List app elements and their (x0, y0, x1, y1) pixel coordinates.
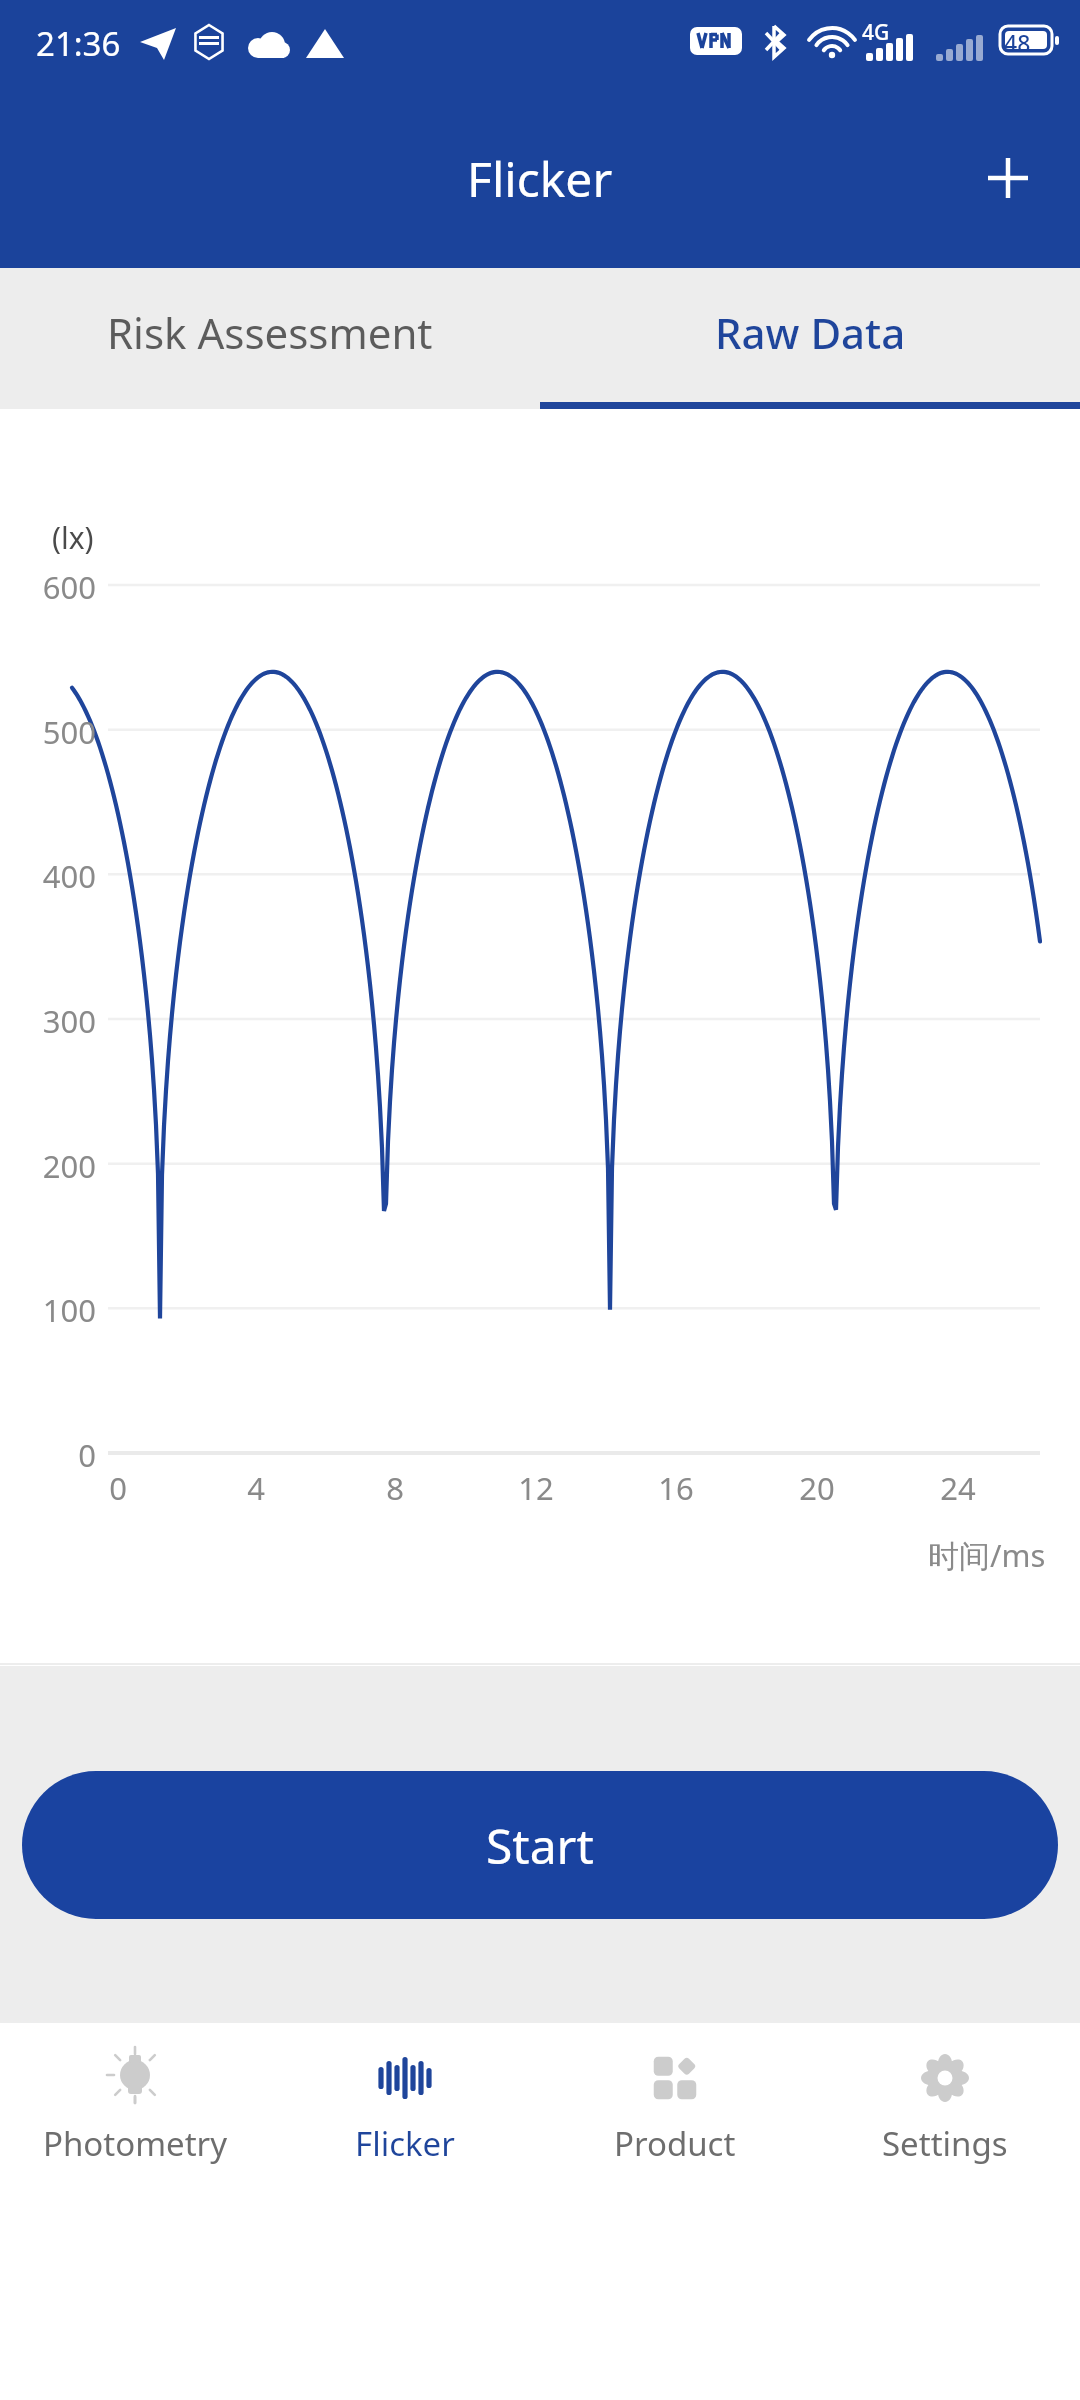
button[interactable]: Risk Assessment (0, 268, 540, 409)
staticText: Raw Data (715, 304, 906, 361)
staticText: Start (486, 1813, 594, 1878)
staticText: 4G (862, 18, 890, 47)
staticText: Flicker (355, 2121, 455, 2166)
staticText: 16 (636, 1467, 716, 1509)
staticText: 21:36 (36, 21, 121, 66)
button[interactable]: Raw Data (540, 268, 1080, 409)
staticText: (lx) (52, 517, 94, 558)
staticText: 4 (216, 1467, 296, 1509)
staticText: 500 (8, 711, 96, 753)
staticText: 20 (777, 1467, 857, 1509)
staticText: Settings (882, 2121, 1008, 2166)
staticText: Risk Assessment (107, 304, 433, 361)
button[interactable]: Add (966, 136, 1050, 220)
staticText: 0 (78, 1467, 158, 1509)
button[interactable]: Start (22, 1771, 1058, 1919)
staticText: 时间/ms (928, 1534, 1046, 1576)
staticText: 48 (1004, 27, 1031, 58)
staticText: 400 (8, 855, 96, 897)
staticText: 24 (918, 1467, 998, 1509)
staticText: Photometry (43, 2121, 228, 2166)
staticText: 8 (355, 1467, 435, 1509)
staticText: 0 (8, 1434, 96, 1476)
button[interactable]: Settings (810, 2023, 1080, 2192)
staticText: 300 (8, 1000, 96, 1042)
staticText: 12 (496, 1467, 576, 1509)
staticText: Flicker (467, 146, 613, 211)
staticText: 100 (8, 1289, 96, 1331)
button[interactable]: Photometry (0, 2023, 270, 2192)
staticText: 200 (8, 1145, 96, 1187)
staticText: Product (614, 2121, 736, 2166)
button[interactable]: Flicker (270, 2023, 540, 2192)
staticText: 600 (8, 566, 96, 608)
button[interactable]: Product (540, 2023, 810, 2192)
